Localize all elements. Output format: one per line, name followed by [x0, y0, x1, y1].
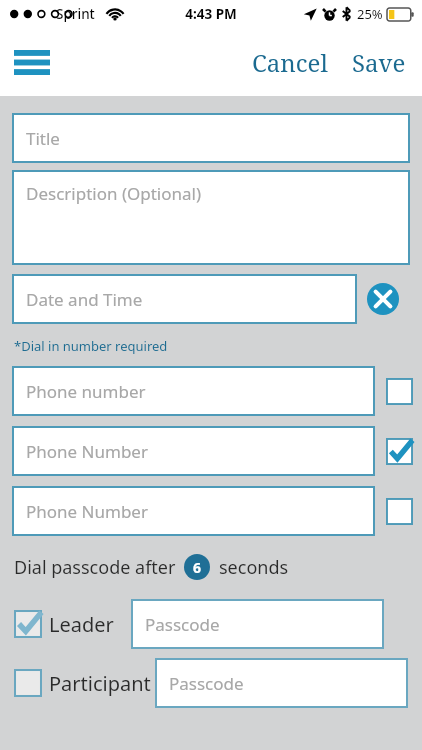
staticText: Passcode	[145, 613, 220, 636]
staticText: Cancel	[252, 46, 328, 79]
staticText: Participant	[49, 670, 151, 697]
button[interactable]: Phone Number	[14, 428, 373, 474]
button[interactable]: Select dial-in number	[386, 378, 413, 405]
button[interactable]: Leader enabled	[14, 610, 42, 638]
staticText: seconds	[219, 555, 289, 580]
button[interactable]: Select dial-in number	[386, 498, 413, 525]
button[interactable]: Passcode	[133, 601, 382, 647]
staticText: 4:43 PM	[185, 5, 237, 23]
staticText: 25%	[357, 5, 383, 23]
staticText: Leader	[49, 611, 114, 638]
staticText: Sprint	[56, 5, 95, 23]
button[interactable]: Date and Time	[14, 276, 355, 322]
staticText: Phone number	[26, 380, 146, 403]
staticText: Phone Number	[26, 500, 148, 523]
button[interactable]: Passcode	[157, 660, 406, 706]
staticText: Save	[352, 46, 406, 79]
staticText: Dial passcode after	[14, 555, 176, 580]
button[interactable]: Phone number	[14, 368, 373, 414]
button[interactable]: Dial-in number selected	[386, 438, 413, 465]
button[interactable]: Description (Optional)	[14, 172, 408, 263]
button[interactable]: Participant disabled	[14, 669, 42, 697]
staticText: *Dial in number required	[14, 337, 168, 355]
staticText: Phone Number	[26, 440, 148, 463]
staticText: Title	[26, 127, 60, 150]
staticText: Date and Time	[26, 288, 143, 311]
staticText: 6	[193, 558, 202, 577]
button[interactable]: Clear date and time	[367, 283, 399, 315]
button[interactable]: Menu	[8, 42, 56, 82]
button[interactable]: Phone Number	[14, 488, 373, 534]
button[interactable]: Title	[14, 115, 408, 161]
staticText: Description (Optional)	[26, 182, 202, 205]
button[interactable]: Cancel	[246, 40, 334, 85]
staticText: Passcode	[169, 672, 244, 695]
button[interactable]: Save	[346, 40, 412, 85]
button[interactable]: Delay 6 seconds	[184, 554, 210, 580]
